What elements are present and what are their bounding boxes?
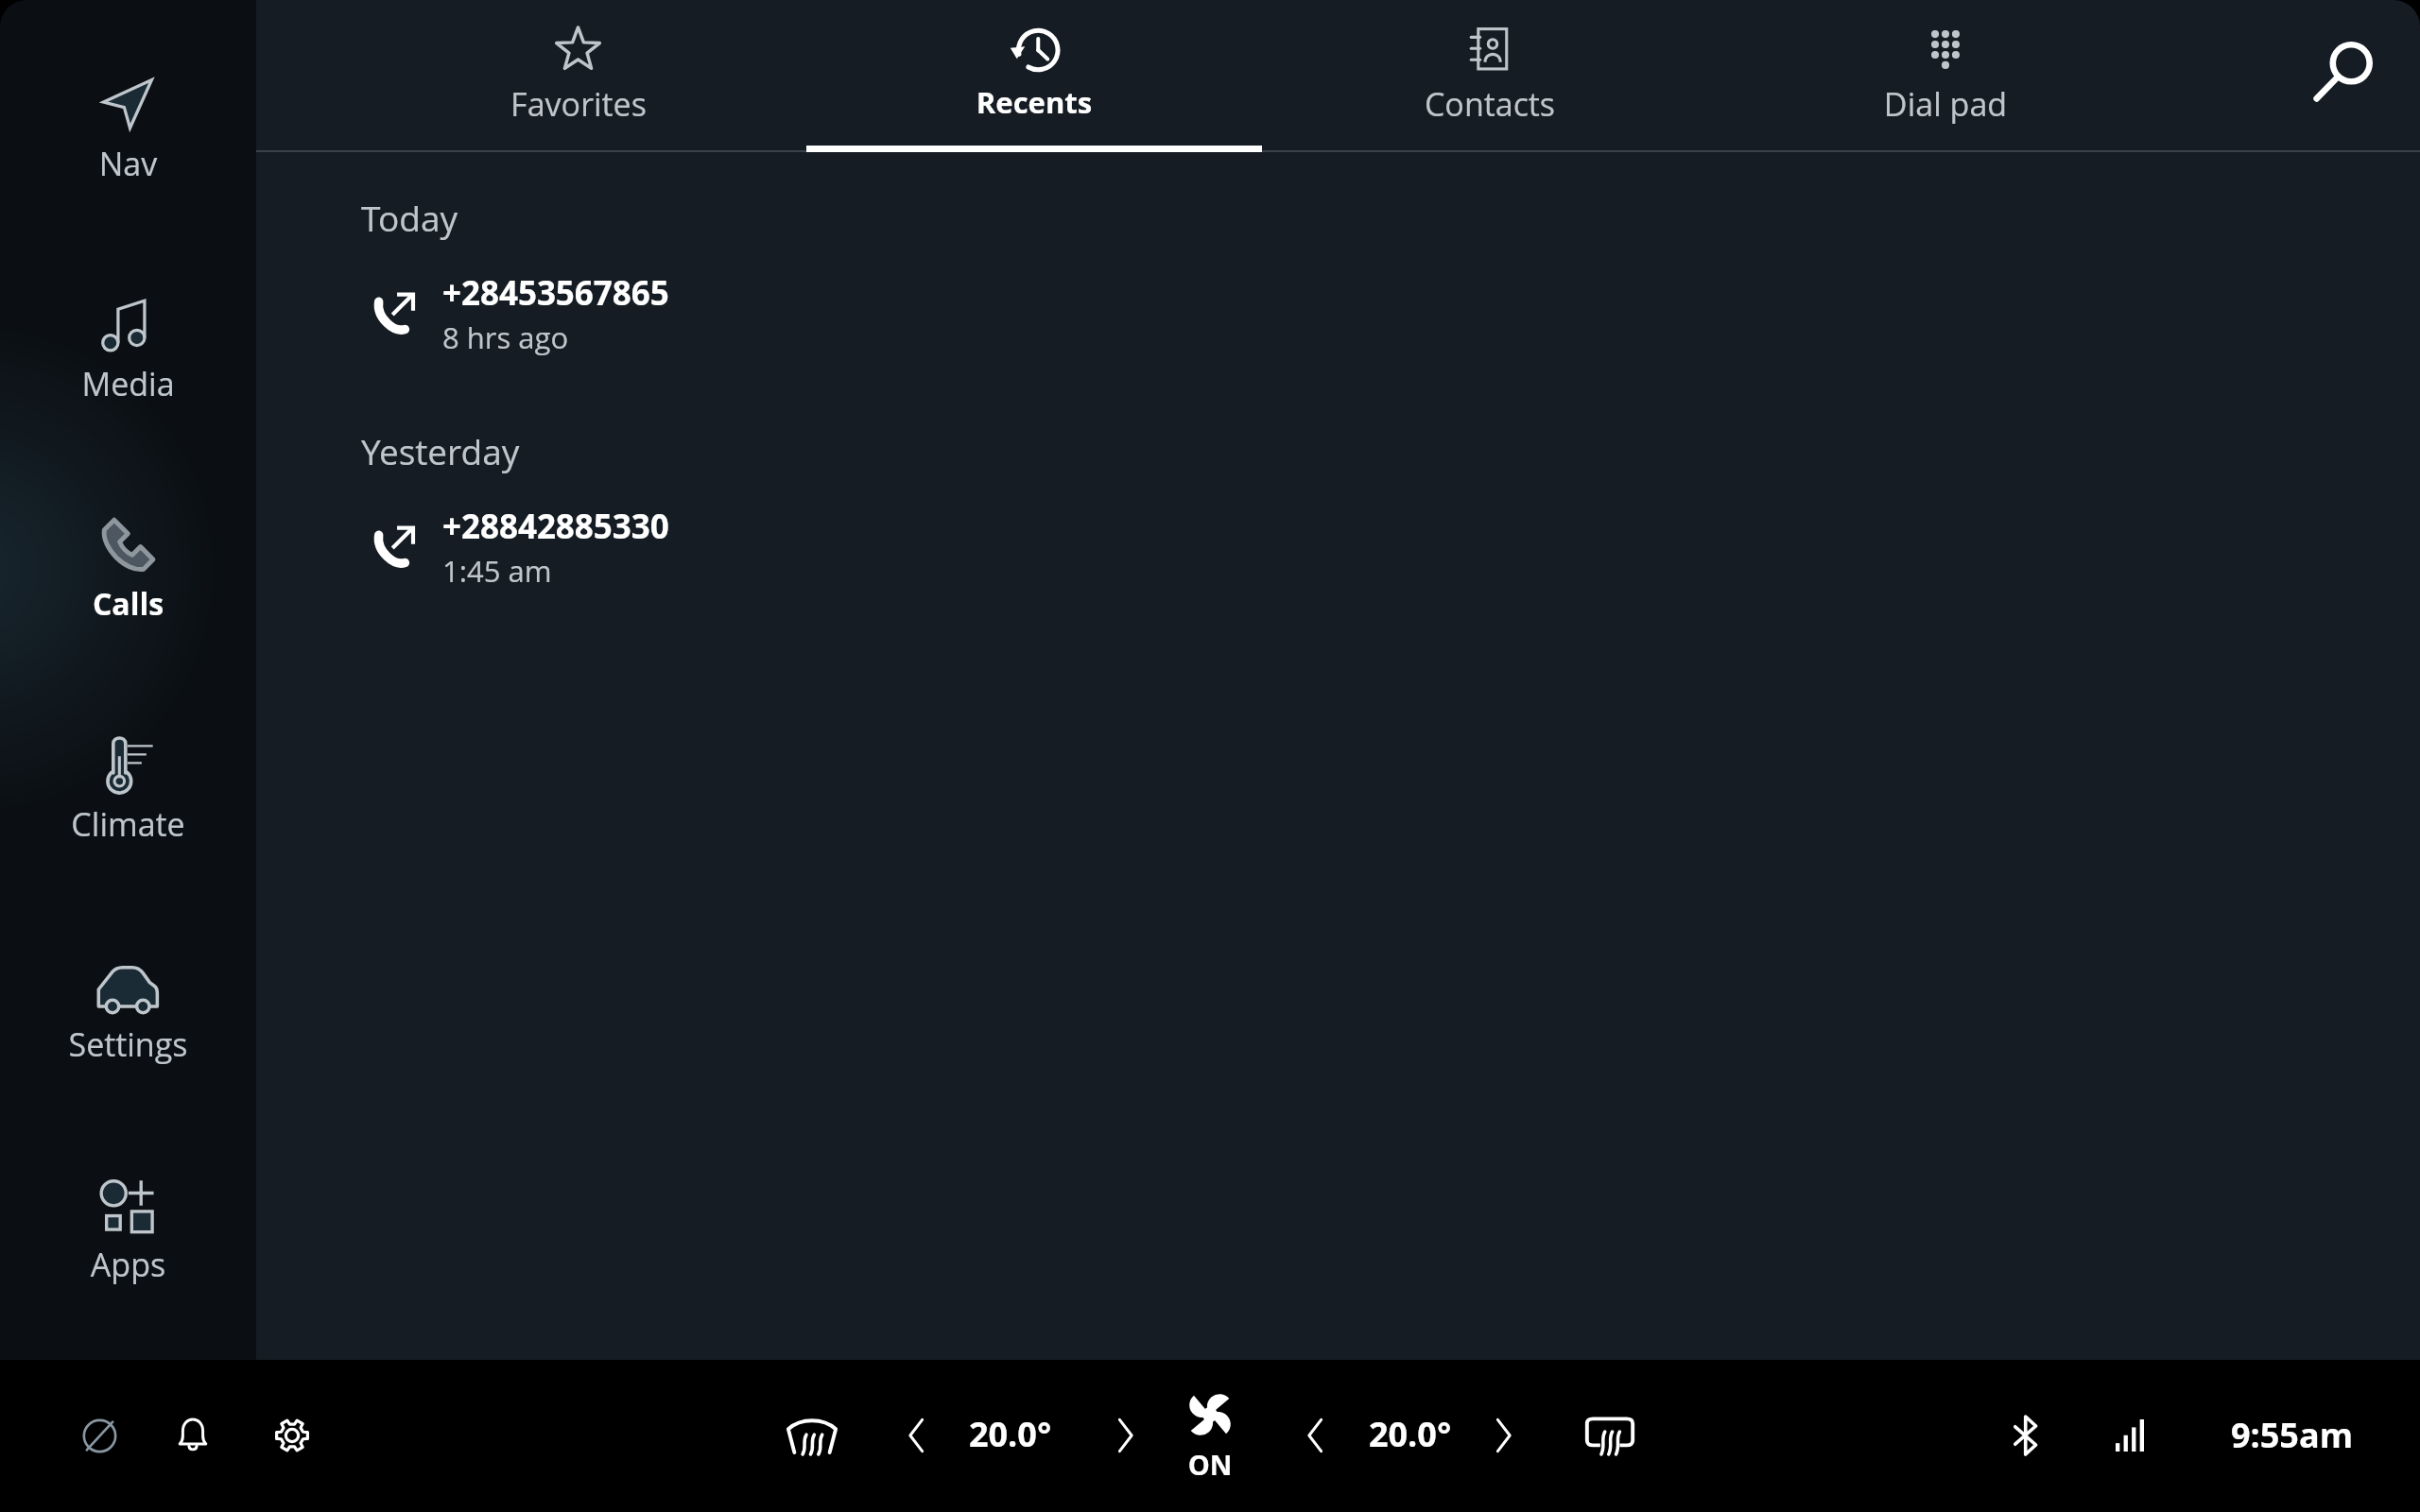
staticText: Yesterday xyxy=(361,427,520,474)
button[interactable]: Settings xyxy=(0,899,256,1073)
button[interactable]: Notifications xyxy=(163,1404,223,1467)
staticText: Dial pad xyxy=(1718,82,2173,126)
staticText: 20.0° xyxy=(1369,1411,1452,1457)
button[interactable]: Bluetooth xyxy=(1999,1403,2052,1468)
staticText: ON xyxy=(1177,1446,1243,1483)
staticText: +28453567865 xyxy=(442,270,669,316)
button[interactable]: Decrease passenger temperature xyxy=(1291,1404,1339,1467)
staticText: Favorites xyxy=(351,82,806,126)
button[interactable]: Nav xyxy=(0,17,256,191)
button[interactable]: Dial pad xyxy=(1718,0,2173,152)
staticText: Climate xyxy=(0,802,256,846)
staticText: Recents xyxy=(806,82,1262,122)
button[interactable]: Search xyxy=(2310,43,2373,105)
button[interactable]: Front defroster xyxy=(773,1403,851,1468)
button[interactable]: Favorites xyxy=(351,0,806,152)
button[interactable]: Do not disturb xyxy=(69,1405,130,1467)
staticText: 8 hrs ago xyxy=(442,318,569,357)
button[interactable]: Apps xyxy=(0,1119,256,1293)
button[interactable]: Recents xyxy=(806,0,1262,152)
button[interactable]: Increase passenger temperature xyxy=(1480,1404,1528,1467)
staticText: Contacts xyxy=(1262,82,1718,126)
staticText: Media xyxy=(0,362,256,405)
button[interactable]: +28453567865 xyxy=(256,248,2420,389)
button[interactable]: Contacts xyxy=(1262,0,1718,152)
staticText: Today xyxy=(361,194,458,241)
button[interactable]: Climate xyxy=(0,679,256,852)
button[interactable]: Calls xyxy=(0,457,256,631)
staticText: 20.0° xyxy=(969,1411,1052,1457)
staticText: 9:55am xyxy=(2231,1412,2354,1458)
staticText: Calls xyxy=(0,583,256,625)
staticText: Settings xyxy=(0,1022,256,1066)
staticText: Apps xyxy=(0,1243,256,1286)
button[interactable]: +28842885330 xyxy=(256,481,2420,623)
button[interactable]: Settings xyxy=(261,1404,323,1467)
button[interactable]: Rear defroster xyxy=(1572,1403,1648,1468)
staticText: +28842885330 xyxy=(442,504,669,549)
button[interactable]: Decrease driver temperature xyxy=(892,1404,940,1467)
staticText: Nav xyxy=(0,142,256,185)
button[interactable]: Media xyxy=(0,237,256,411)
button[interactable]: Signal strength xyxy=(2102,1406,2157,1465)
staticText: 1:45 am xyxy=(442,551,552,591)
button[interactable]: Fan on xyxy=(1177,1380,1243,1484)
button[interactable]: Increase driver temperature xyxy=(1102,1404,1149,1467)
